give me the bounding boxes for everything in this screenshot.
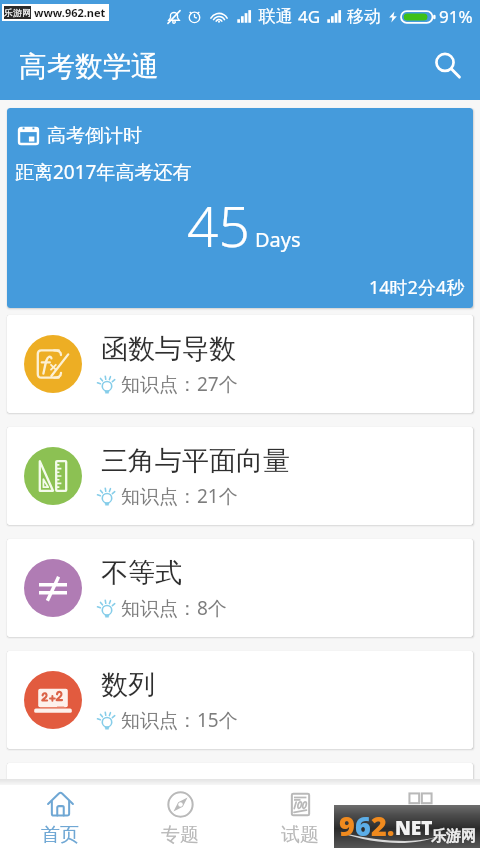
staticText: 乐游网: [431, 827, 476, 846]
staticText: 知识点：8个: [121, 595, 227, 621]
staticText: 高考数学通: [19, 49, 159, 84]
staticText: 6: [355, 807, 371, 844]
button[interactable]: 我的: [360, 785, 480, 853]
button[interactable]: 函数与导数: [7, 315, 473, 413]
staticText: 试题: [281, 823, 319, 847]
staticText: 2.: [371, 807, 395, 844]
staticText: NET: [395, 815, 433, 841]
staticText: www.962.net: [34, 5, 106, 20]
staticText: 我的: [401, 823, 439, 847]
staticText: 14时2分4秒: [369, 275, 465, 300]
button[interactable]: 高考倒计时: [7, 108, 473, 308]
staticText: 9: [339, 807, 355, 844]
staticText: 45: [187, 188, 250, 263]
staticText: 4G: [298, 5, 321, 28]
staticText: 乐游网: [4, 7, 31, 18]
button[interactable]: 专题: [120, 785, 240, 853]
staticText: 不等式: [101, 556, 182, 590]
staticText: Days: [255, 226, 301, 253]
staticText: 移动: [347, 6, 381, 27]
button[interactable]: Search: [425, 43, 471, 89]
button[interactable]: 首页: [0, 785, 120, 853]
staticText: 知识点：27个: [121, 371, 238, 397]
staticText: 专题: [161, 823, 199, 847]
staticText: 三角与平面向量: [101, 444, 290, 478]
staticText: 数列: [101, 668, 155, 702]
staticText: 首页: [41, 823, 79, 847]
staticText: 高考倒计时: [47, 124, 142, 148]
staticText: 知识点：21个: [121, 483, 238, 509]
staticText: 联通: [259, 6, 293, 27]
staticText: 函数与导数: [101, 332, 236, 366]
button[interactable]: 三角与平面向量: [7, 427, 473, 525]
staticText: 知识点：15个: [121, 707, 238, 733]
button[interactable]: 试题: [240, 785, 360, 853]
button[interactable]: 不等式: [7, 539, 473, 637]
button[interactable]: 数列: [7, 651, 473, 749]
staticText: 91%: [439, 5, 473, 28]
staticText: 距离2017年高考还有: [15, 159, 192, 185]
